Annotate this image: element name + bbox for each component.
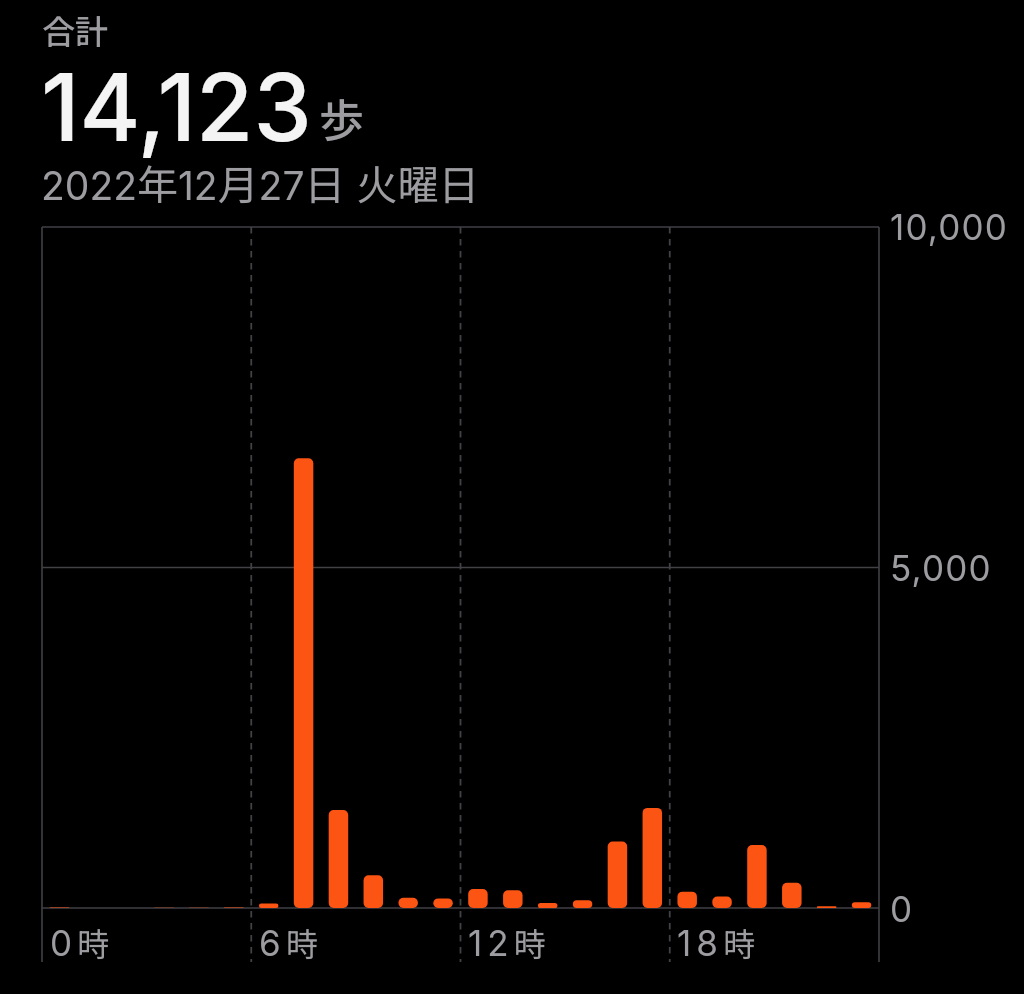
staticText: 合計 bbox=[42, 6, 108, 54]
staticText: 歩 bbox=[319, 85, 365, 150]
staticText: 18時 bbox=[677, 919, 755, 965]
staticText: 0 bbox=[890, 888, 914, 930]
staticText: 12時 bbox=[468, 919, 546, 965]
staticText: 6時 bbox=[259, 919, 318, 965]
staticText: 5,000 bbox=[890, 547, 992, 589]
button[interactable]: 合計 bbox=[24, 0, 504, 214]
staticText: 0時 bbox=[50, 919, 110, 965]
staticText: 2022年12月27日 火曜日 bbox=[41, 152, 480, 211]
button[interactable]: 1日の歩数グラフ bbox=[0, 0, 1024, 962]
staticText: 10,000 bbox=[890, 206, 1009, 248]
staticText: 14,123 bbox=[41, 51, 312, 164]
